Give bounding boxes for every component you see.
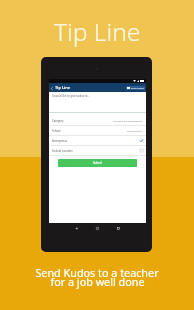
staticText: Category: [52, 119, 64, 123]
staticText: I would like to give kudos to...: [52, 94, 90, 98]
staticText: SEND KUDOS: [131, 87, 144, 90]
button[interactable]: Anonymous: [49, 136, 146, 145]
button[interactable]: Include Location: [49, 146, 146, 155]
button[interactable]: Category: [49, 116, 146, 125]
staticText: Submit: [93, 161, 102, 165]
staticText: Send Kudos to a teacher: [35, 265, 159, 280]
staticText: for a job well done: [50, 274, 145, 289]
staticText: Include Location: [52, 149, 73, 153]
staticText: Tip Line: [54, 15, 141, 49]
staticText: Tip Line: [55, 85, 71, 91]
staticText: Anonymous: [52, 139, 68, 143]
button[interactable]: Back: [72, 224, 81, 233]
button[interactable]: Navigate up: [50, 86, 54, 90]
staticText: Select District: [127, 129, 143, 132]
button[interactable]: School: [49, 126, 146, 135]
button[interactable]: Submit: [58, 159, 137, 167]
staticText: Choose a list of categories: [113, 119, 143, 122]
button[interactable]: Home: [93, 224, 102, 233]
staticText: School: [52, 129, 61, 133]
button[interactable]: SEND KUDOS: [126, 86, 145, 90]
button[interactable]: Recents: [114, 224, 123, 233]
